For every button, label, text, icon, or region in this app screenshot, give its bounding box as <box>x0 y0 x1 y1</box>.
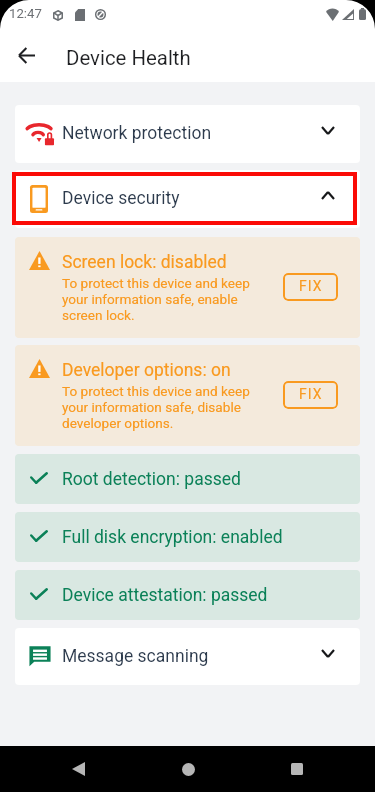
button[interactable]: Full disk encryption: enabled <box>15 512 360 562</box>
button[interactable]: Network protection <box>15 105 360 163</box>
button[interactable]: Back <box>8 37 45 74</box>
button[interactable]: Developer options: on <box>15 345 360 446</box>
staticText: FIX <box>299 386 323 402</box>
staticText: Root detection: passed <box>62 469 241 490</box>
staticText: FIX <box>299 278 323 294</box>
button[interactable]: Device attestation: passed <box>15 570 360 620</box>
staticText: 12:47 <box>9 6 42 21</box>
button[interactable]: FIX <box>283 273 338 301</box>
button[interactable]: Message scanning <box>15 628 360 685</box>
button[interactable]: Screen lock: disabled <box>15 237 360 338</box>
staticText: Device Health <box>66 46 191 70</box>
button[interactable]: Root detection: passed <box>15 454 360 504</box>
staticText: Device attestation: passed <box>62 585 268 606</box>
button[interactable]: Back <box>46 746 110 792</box>
staticText: Developer options: on <box>62 360 231 381</box>
button[interactable]: Device security <box>15 170 360 228</box>
staticText: To protect this device and keep your inf… <box>62 275 258 323</box>
button[interactable]: Recent apps <box>265 746 329 792</box>
staticText: Device security <box>62 188 180 209</box>
staticText: Screen lock: disabled <box>62 252 227 273</box>
staticText: Network protection <box>62 123 212 144</box>
button[interactable]: FIX <box>283 381 338 409</box>
staticText: Message scanning <box>62 646 209 667</box>
staticText: Full disk encryption: enabled <box>62 527 283 548</box>
button[interactable]: Home <box>156 746 220 792</box>
staticText: To protect this device and keep your inf… <box>62 383 258 431</box>
